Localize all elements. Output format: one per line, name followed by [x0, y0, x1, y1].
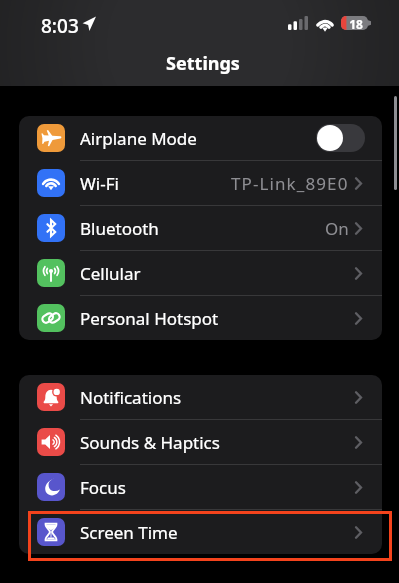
button[interactable]: Focus: [19, 465, 382, 509]
button[interactable]: Notifications: [19, 375, 382, 419]
button[interactable]: Airplane Mode toggle, off: [316, 124, 365, 152]
staticText: TP-Link_89E0: [231, 172, 349, 195]
staticText: 18: [347, 16, 365, 30]
button[interactable]: Personal Hotspot: [19, 296, 382, 340]
button[interactable]: Wi-Fi: [19, 161, 382, 205]
staticText: 8:03: [41, 13, 79, 39]
staticText: Personal Hotspot: [80, 307, 219, 330]
button[interactable]: Airplane Mode: [19, 116, 382, 160]
staticText: Cellular: [80, 262, 141, 285]
staticText: Screen Time: [80, 521, 178, 544]
staticText: Focus: [80, 476, 126, 499]
button[interactable]: Screen Time: [19, 510, 382, 554]
button[interactable]: Sounds & Haptics: [19, 420, 382, 464]
staticText: On: [325, 217, 349, 240]
button[interactable]: Bluetooth: [19, 206, 382, 250]
staticText: Settings: [166, 51, 240, 76]
button[interactable]: Cellular: [19, 251, 382, 295]
staticText: Sounds & Haptics: [80, 431, 220, 454]
staticText: Bluetooth: [80, 217, 159, 240]
staticText: Notifications: [80, 386, 182, 409]
staticText: Airplane Mode: [80, 127, 197, 150]
staticText: Wi-Fi: [80, 172, 119, 195]
